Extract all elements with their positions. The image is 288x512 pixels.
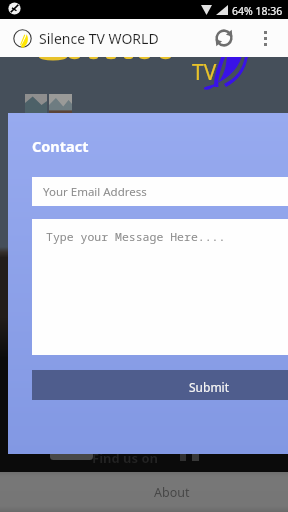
staticText: Type your Message Here.... [46,229,226,245]
staticText: Contact [32,136,89,156]
staticText: Find us on [92,449,159,467]
button[interactable]: Submit [32,370,288,400]
button[interactable]: About [0,472,288,512]
staticText: Submit [189,379,230,395]
button[interactable]: Type your Message Here.... [32,219,288,355]
staticText: 64% 18:36 [232,4,283,18]
staticText: Your Email Address [43,184,147,200]
button[interactable]: Refresh [206,20,242,56]
staticText: Silence TV WORLD [39,29,159,48]
button[interactable]: More options [250,23,280,53]
button[interactable]: Your Email Address [32,177,288,206]
staticText: About [154,484,190,501]
staticText: TV [192,58,217,87]
